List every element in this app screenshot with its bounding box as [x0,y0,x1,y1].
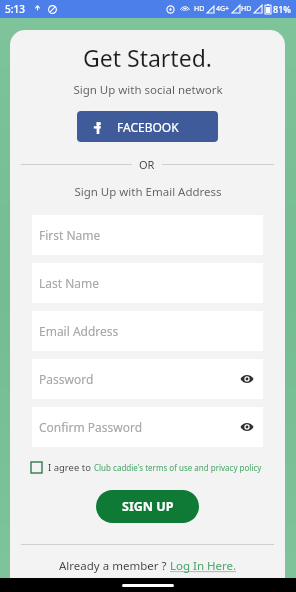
staticText: 81% [273,3,291,15]
staticText: OR [139,157,155,172]
button[interactable]: I agree checkbox [31,461,264,474]
staticText: HD [241,4,252,14]
staticText: HD [194,4,205,14]
button[interactable]: Club caddie's terms of use and privacy p… [94,462,262,473]
staticText: Sign Up with social network [73,82,223,98]
staticText: 5:13 [5,2,25,16]
staticText: I agree to [48,461,91,474]
button[interactable]: Toggle password visibility [238,418,256,436]
staticText: SIGN UP [122,498,174,515]
staticText: FACEBOOK [117,119,179,135]
staticText: Last Name [39,275,100,291]
staticText: Confirm Password [39,419,143,435]
staticText: First Name [39,227,101,243]
button[interactable]: FACEBOOK [77,111,218,142]
button[interactable]: SIGN UP [96,490,199,523]
staticText: Sign Up with Email Address [74,184,222,200]
staticText: Email Address [39,323,119,339]
button[interactable]: Log In Here. [170,558,237,574]
button[interactable]: Email Address [32,311,263,351]
button[interactable]: Toggle password visibility [238,370,256,388]
button[interactable]: Last Name [32,263,263,303]
staticText: Password [39,371,94,387]
other: I agree checkbox [31,462,42,473]
button[interactable]: Password [32,359,263,399]
button[interactable]: First Name [32,215,263,255]
staticText: Get Started. [83,42,212,73]
staticText: 4G+ [216,4,230,14]
button[interactable]: Confirm Password [32,407,263,447]
staticText: Already a member ? [59,558,167,574]
